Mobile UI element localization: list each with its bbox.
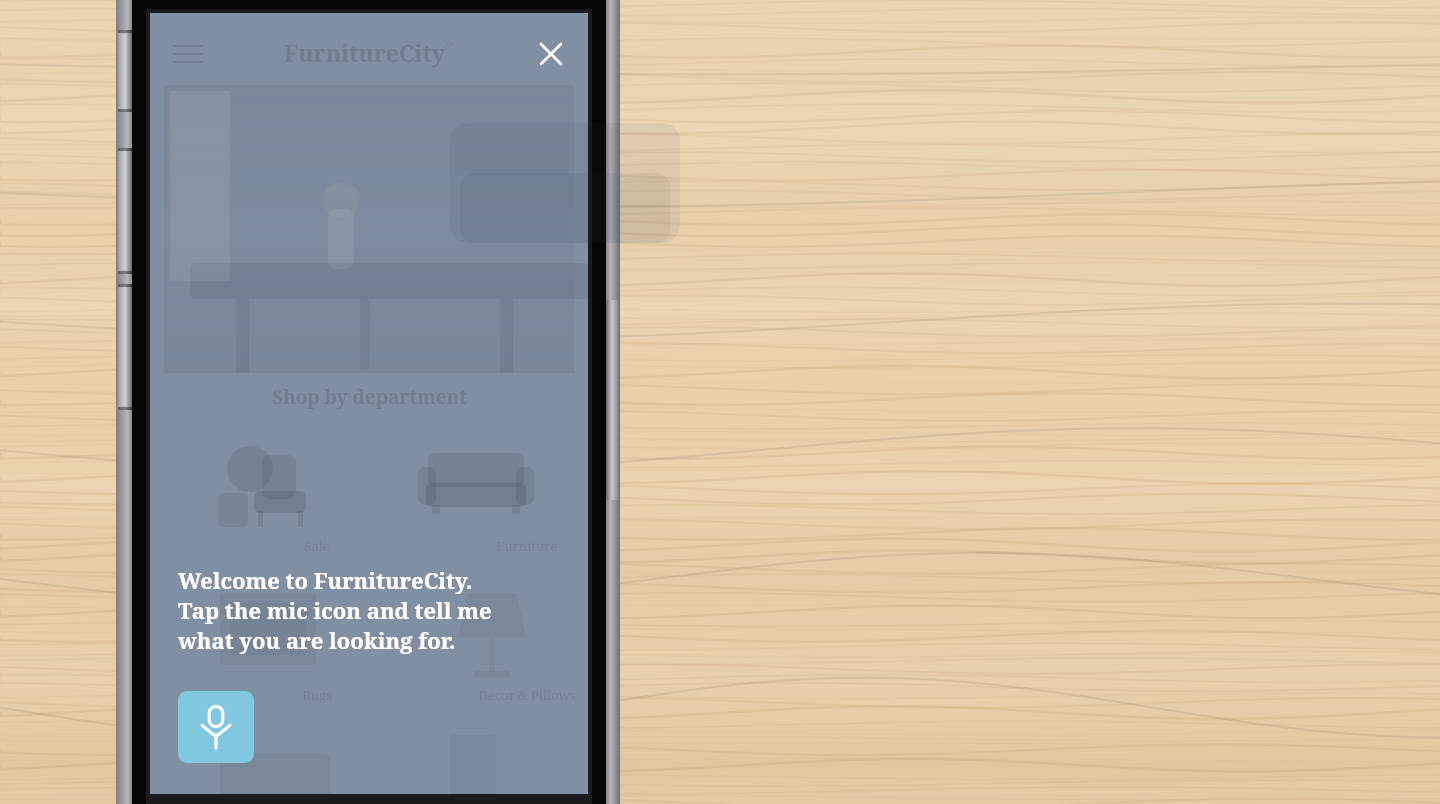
staticText: Tap the mic icon and tell me: [178, 595, 492, 625]
staticText: Shop by department: [272, 384, 467, 410]
staticText: Welcome to FurnitureCity.: [178, 565, 473, 595]
button[interactable]: Voice search microphone: [178, 691, 254, 763]
button[interactable]: Menu: [166, 32, 210, 76]
staticText: Furniture: [472, 537, 582, 555]
staticText: FurnitureCity: [284, 37, 446, 68]
button[interactable]: Close: [528, 31, 574, 77]
staticText: what you are looking for.: [178, 625, 456, 655]
staticText: Decor & Pillows: [472, 686, 582, 704]
